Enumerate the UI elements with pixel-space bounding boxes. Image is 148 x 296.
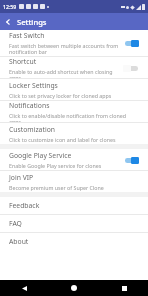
staticText: Fast Switch	[9, 31, 45, 40]
button[interactable]: Notifications	[0, 101, 148, 122]
button[interactable]: Back	[17, 281, 31, 295]
staticText: Click to set privacy locker for cloned a…	[9, 92, 112, 99]
staticText: Shortcut	[9, 57, 37, 66]
staticText: Notifications	[9, 101, 50, 110]
button[interactable]: Join VIP	[0, 171, 148, 192]
button[interactable]: Home	[67, 281, 81, 295]
button[interactable]: Back	[0, 14, 15, 29]
staticText: Join VIP	[9, 173, 34, 182]
button[interactable]: Google Play Service	[0, 149, 148, 170]
staticText: Fast switch between multiple accounts fr…	[9, 42, 119, 56]
button[interactable]: Locker Settings	[0, 79, 148, 100]
staticText: Click to enable/disable notification fro…	[9, 112, 139, 122]
staticText: Enable to auto-add shortcut when closing…	[9, 68, 120, 78]
staticText: Locker Settings	[9, 81, 58, 90]
staticText: Google Play Service	[9, 151, 72, 160]
button[interactable]: Recent apps	[117, 281, 131, 295]
staticText: 12:59	[3, 3, 17, 10]
staticText: FAQ	[9, 219, 22, 228]
staticText: Click to customize icon and label for cl…	[9, 136, 116, 143]
staticText: Enable Google Play service for clones	[9, 162, 102, 169]
staticText: Become premium user of Super Clone	[9, 184, 104, 191]
staticText: Customization	[9, 125, 55, 134]
staticText: Feedback	[9, 201, 40, 210]
staticText: Settings	[17, 17, 47, 27]
button[interactable]: Feedback	[0, 197, 148, 214]
button[interactable]: Customization	[0, 123, 148, 144]
button[interactable]: Shortcut	[0, 57, 148, 78]
button[interactable]: About	[0, 233, 148, 250]
button[interactable]: FAQ	[0, 215, 148, 232]
staticText: About	[9, 237, 29, 246]
button[interactable]: Fast Switch	[0, 30, 148, 56]
